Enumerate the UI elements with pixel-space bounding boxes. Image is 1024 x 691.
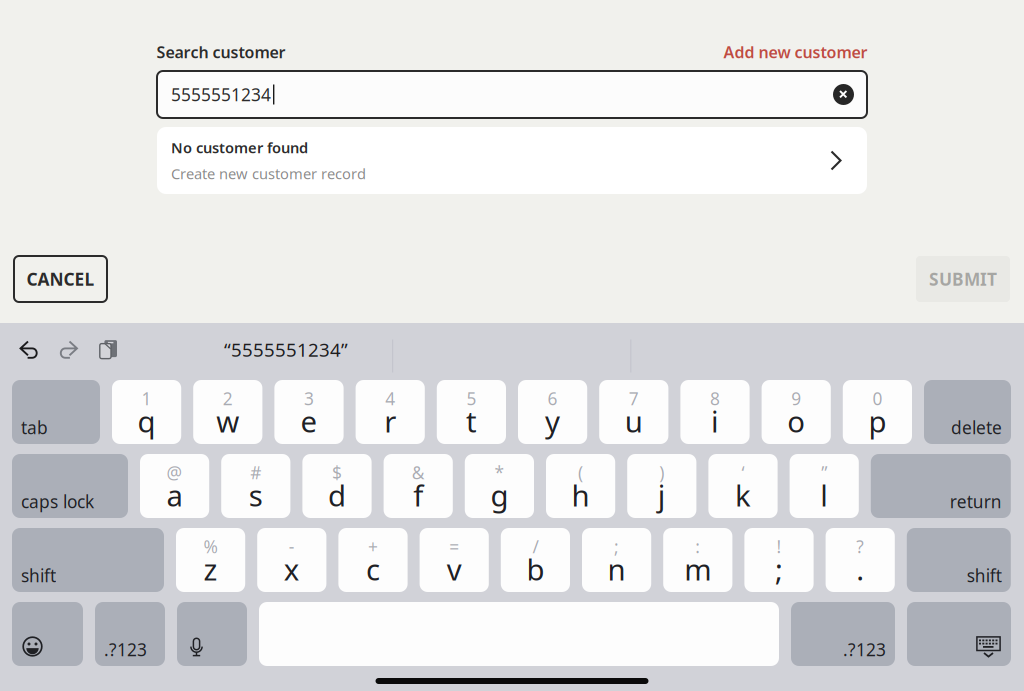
button[interactable]: : bbox=[663, 528, 732, 592]
button[interactable]: CANCEL bbox=[14, 256, 107, 302]
staticText: v bbox=[447, 549, 462, 588]
staticText: e bbox=[300, 401, 317, 440]
button[interactable]: + bbox=[338, 528, 408, 592]
staticText: CANCEL bbox=[26, 267, 94, 290]
staticText: $ bbox=[332, 461, 342, 484]
staticText: j bbox=[658, 475, 666, 514]
staticText: 5555551234 bbox=[171, 83, 271, 106]
staticText: .?123 bbox=[843, 638, 886, 661]
staticText: / bbox=[532, 535, 538, 558]
staticText: 2 bbox=[223, 387, 233, 410]
staticText: b bbox=[526, 549, 544, 588]
staticText: & bbox=[412, 461, 425, 484]
button[interactable]: 5 bbox=[437, 380, 506, 444]
staticText: No customer found bbox=[171, 138, 308, 157]
staticText: q bbox=[138, 401, 156, 440]
button[interactable]: = bbox=[420, 528, 489, 592]
staticText: 0 bbox=[872, 387, 882, 410]
button[interactable]: 0 bbox=[843, 380, 912, 444]
button[interactable]: 3 bbox=[274, 380, 344, 444]
staticText: 1 bbox=[142, 387, 152, 410]
staticText: ‘ bbox=[741, 461, 744, 484]
button[interactable]: % bbox=[176, 528, 245, 592]
staticText: 6 bbox=[548, 387, 558, 410]
button[interactable]: return bbox=[871, 454, 1011, 518]
button[interactable]: No customer found bbox=[157, 127, 867, 194]
button[interactable]: ; bbox=[582, 528, 651, 592]
staticText: h bbox=[572, 475, 590, 514]
staticText: s bbox=[249, 475, 263, 514]
staticText: z bbox=[204, 549, 218, 588]
staticText: ; bbox=[775, 549, 783, 588]
button[interactable]: ‘ bbox=[708, 454, 778, 518]
button[interactable]: - bbox=[257, 528, 326, 592]
button[interactable]: SUBMIT bbox=[916, 256, 1010, 302]
button[interactable]: shift bbox=[12, 528, 164, 592]
staticText: g bbox=[490, 475, 508, 514]
staticText: delete bbox=[951, 416, 1002, 439]
button[interactable]: ( bbox=[546, 454, 615, 518]
button[interactable]: * bbox=[465, 454, 534, 518]
staticText: r bbox=[384, 401, 396, 440]
button[interactable]: .?123 bbox=[95, 602, 165, 666]
button[interactable]: 2 bbox=[193, 380, 262, 444]
button[interactable]: Clear text bbox=[830, 81, 857, 108]
staticText: y bbox=[545, 401, 560, 440]
button[interactable]: shift bbox=[907, 528, 1011, 592]
staticText: SUBMIT bbox=[929, 267, 997, 290]
staticText: Add new customer bbox=[723, 41, 867, 63]
staticText: p bbox=[868, 401, 886, 440]
staticText: return bbox=[950, 490, 1002, 513]
staticText: shift bbox=[21, 564, 56, 587]
staticText: shift bbox=[967, 564, 1002, 587]
staticText: ” bbox=[821, 461, 827, 484]
staticText: l bbox=[820, 475, 828, 514]
button[interactable]: ! bbox=[744, 528, 814, 592]
staticText: 4 bbox=[385, 387, 395, 410]
staticText: k bbox=[735, 475, 751, 514]
button[interactable]: 9 bbox=[762, 380, 831, 444]
button[interactable]: & bbox=[384, 454, 453, 518]
button[interactable]: ” bbox=[790, 454, 859, 518]
button[interactable]: ? bbox=[826, 528, 895, 592]
staticText: - bbox=[289, 535, 295, 558]
button[interactable]: Paste bbox=[99, 331, 118, 367]
staticText: # bbox=[250, 461, 261, 484]
staticText: f bbox=[413, 475, 423, 514]
button[interactable]: delete bbox=[924, 380, 1011, 444]
button[interactable]: $ bbox=[302, 454, 372, 518]
staticText: caps lock bbox=[21, 490, 94, 513]
button[interactable]: .?123 bbox=[791, 602, 895, 666]
staticText: u bbox=[625, 401, 643, 440]
button[interactable]: Hide keyboard bbox=[907, 602, 1011, 666]
button[interactable]: tab bbox=[12, 380, 100, 444]
button[interactable]: ) bbox=[627, 454, 696, 518]
button[interactable]: @ bbox=[140, 454, 209, 518]
staticText: Search customer bbox=[156, 41, 285, 63]
button[interactable]: Dictation bbox=[177, 602, 247, 666]
staticText: + bbox=[368, 535, 378, 558]
staticText: ; bbox=[614, 535, 619, 558]
button[interactable]: Emoji bbox=[12, 602, 83, 666]
staticText: m bbox=[684, 549, 711, 588]
staticText: n bbox=[608, 549, 626, 588]
button[interactable]: Undo bbox=[19, 331, 38, 367]
staticText: .?123 bbox=[104, 638, 147, 661]
button[interactable]: 4 bbox=[356, 380, 425, 444]
button[interactable]: 1 bbox=[112, 380, 181, 444]
button[interactable]: caps lock bbox=[12, 454, 128, 518]
staticText: tab bbox=[21, 416, 48, 439]
button[interactable]: # bbox=[221, 454, 290, 518]
staticText: * bbox=[494, 461, 504, 484]
button[interactable]: 6 bbox=[518, 380, 587, 444]
staticText: = bbox=[449, 535, 459, 558]
button[interactable]: Add new customer bbox=[723, 41, 867, 63]
button[interactable]: 8 bbox=[680, 380, 750, 444]
staticText: 3 bbox=[304, 387, 314, 410]
button[interactable]: 7 bbox=[599, 380, 668, 444]
staticText: % bbox=[204, 535, 218, 558]
staticText: d bbox=[328, 475, 346, 514]
button[interactable]: / bbox=[501, 528, 570, 592]
button[interactable]: Redo bbox=[60, 331, 79, 367]
